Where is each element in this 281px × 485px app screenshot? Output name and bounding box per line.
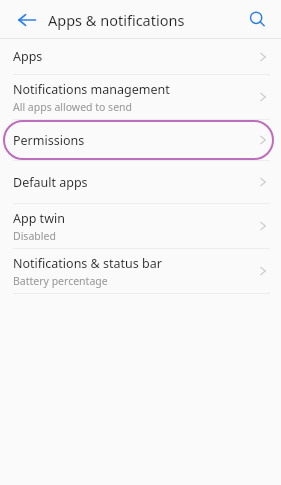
- staticText: App twin: [13, 210, 65, 227]
- staticText: Disabled: [13, 229, 56, 243]
- staticText: Default apps: [13, 174, 88, 191]
- staticText: Notifications & status bar: [13, 255, 162, 272]
- button[interactable]: Apps: [0, 39, 281, 74]
- button[interactable]: Default apps: [0, 161, 281, 203]
- button[interactable]: App twin: [0, 204, 281, 248]
- button[interactable]: Back: [7, 0, 46, 39]
- staticText: Permissions: [13, 132, 85, 149]
- button[interactable]: Notifications management: [0, 75, 281, 119]
- staticText: Apps: [13, 48, 43, 65]
- staticText: All apps allowed to send: [13, 100, 133, 114]
- staticText: Notifications management: [13, 81, 170, 98]
- button[interactable]: Notifications & status bar: [0, 249, 281, 293]
- button[interactable]: Permissions: [0, 120, 281, 160]
- button[interactable]: Search: [238, 0, 277, 39]
- staticText: Apps & notifications: [48, 10, 185, 30]
- staticText: Battery percentage: [13, 274, 108, 288]
